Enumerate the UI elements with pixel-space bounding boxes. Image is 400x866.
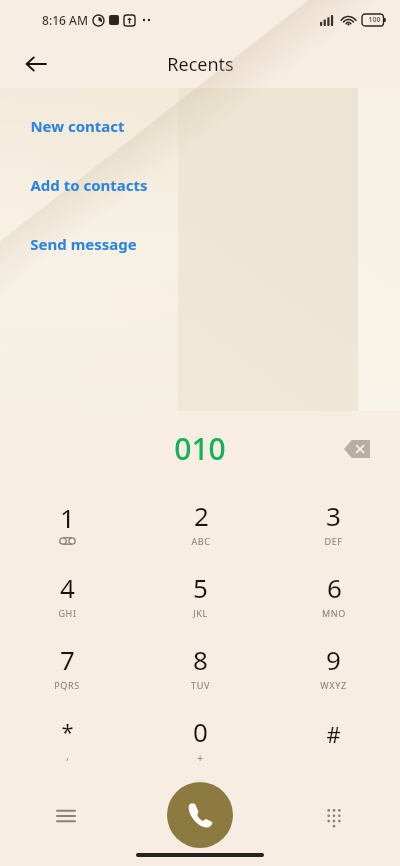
button[interactable]: 6 [267,558,400,630]
staticText: 9 [326,642,341,677]
staticText: Send message [30,234,137,254]
button[interactable]: 5 [134,558,267,630]
button[interactable]: Back [14,42,58,86]
staticText: 3 [326,498,341,533]
staticText: WXYZ [320,679,347,691]
staticText: 100 [368,15,381,25]
button[interactable]: Backspace [336,428,378,470]
staticText: 8 [193,642,208,677]
button[interactable]: # [267,703,400,776]
staticText: * [61,716,74,746]
staticText: PQRS [54,679,80,691]
staticText: 2 [194,498,209,533]
button[interactable]: 9 [267,630,400,703]
staticText: , [66,749,70,763]
button[interactable]: * [0,703,134,776]
staticText: TUV [191,679,210,691]
staticText: ABC [191,535,211,547]
staticText: 5 [193,570,208,605]
button[interactable]: Call log [44,794,88,838]
staticText: 4 [60,570,75,605]
button[interactable]: 1 [0,486,134,558]
staticText: 010 [174,428,226,469]
staticText: DEF [324,535,343,547]
button[interactable]: New contact [0,115,400,137]
staticText: Add to contacts [30,175,148,195]
staticText: New contact [30,116,125,136]
button[interactable]: Add to contacts [0,174,400,196]
button[interactable]: Send message [0,233,400,255]
staticText: GHI [58,607,77,619]
button[interactable]: 3 [267,486,400,558]
staticText: 7 [60,642,75,677]
button[interactable]: 2 [134,486,267,558]
staticText: 0 [193,714,208,749]
button[interactable]: Call [167,782,233,848]
staticText: MNO [322,607,346,619]
staticText: 8:16 AM [42,12,88,28]
button[interactable]: 8 [134,630,267,703]
button[interactable]: 4 [0,558,134,630]
staticText: 6 [327,570,342,605]
staticText: + [197,751,204,765]
staticText: 1 [60,500,75,535]
staticText: # [326,719,341,749]
staticText: JKL [193,607,208,619]
button[interactable]: 7 [0,630,134,703]
button[interactable]: Dialpad [312,794,356,838]
button[interactable]: 0 [134,703,267,776]
staticText: Recents [167,52,234,77]
